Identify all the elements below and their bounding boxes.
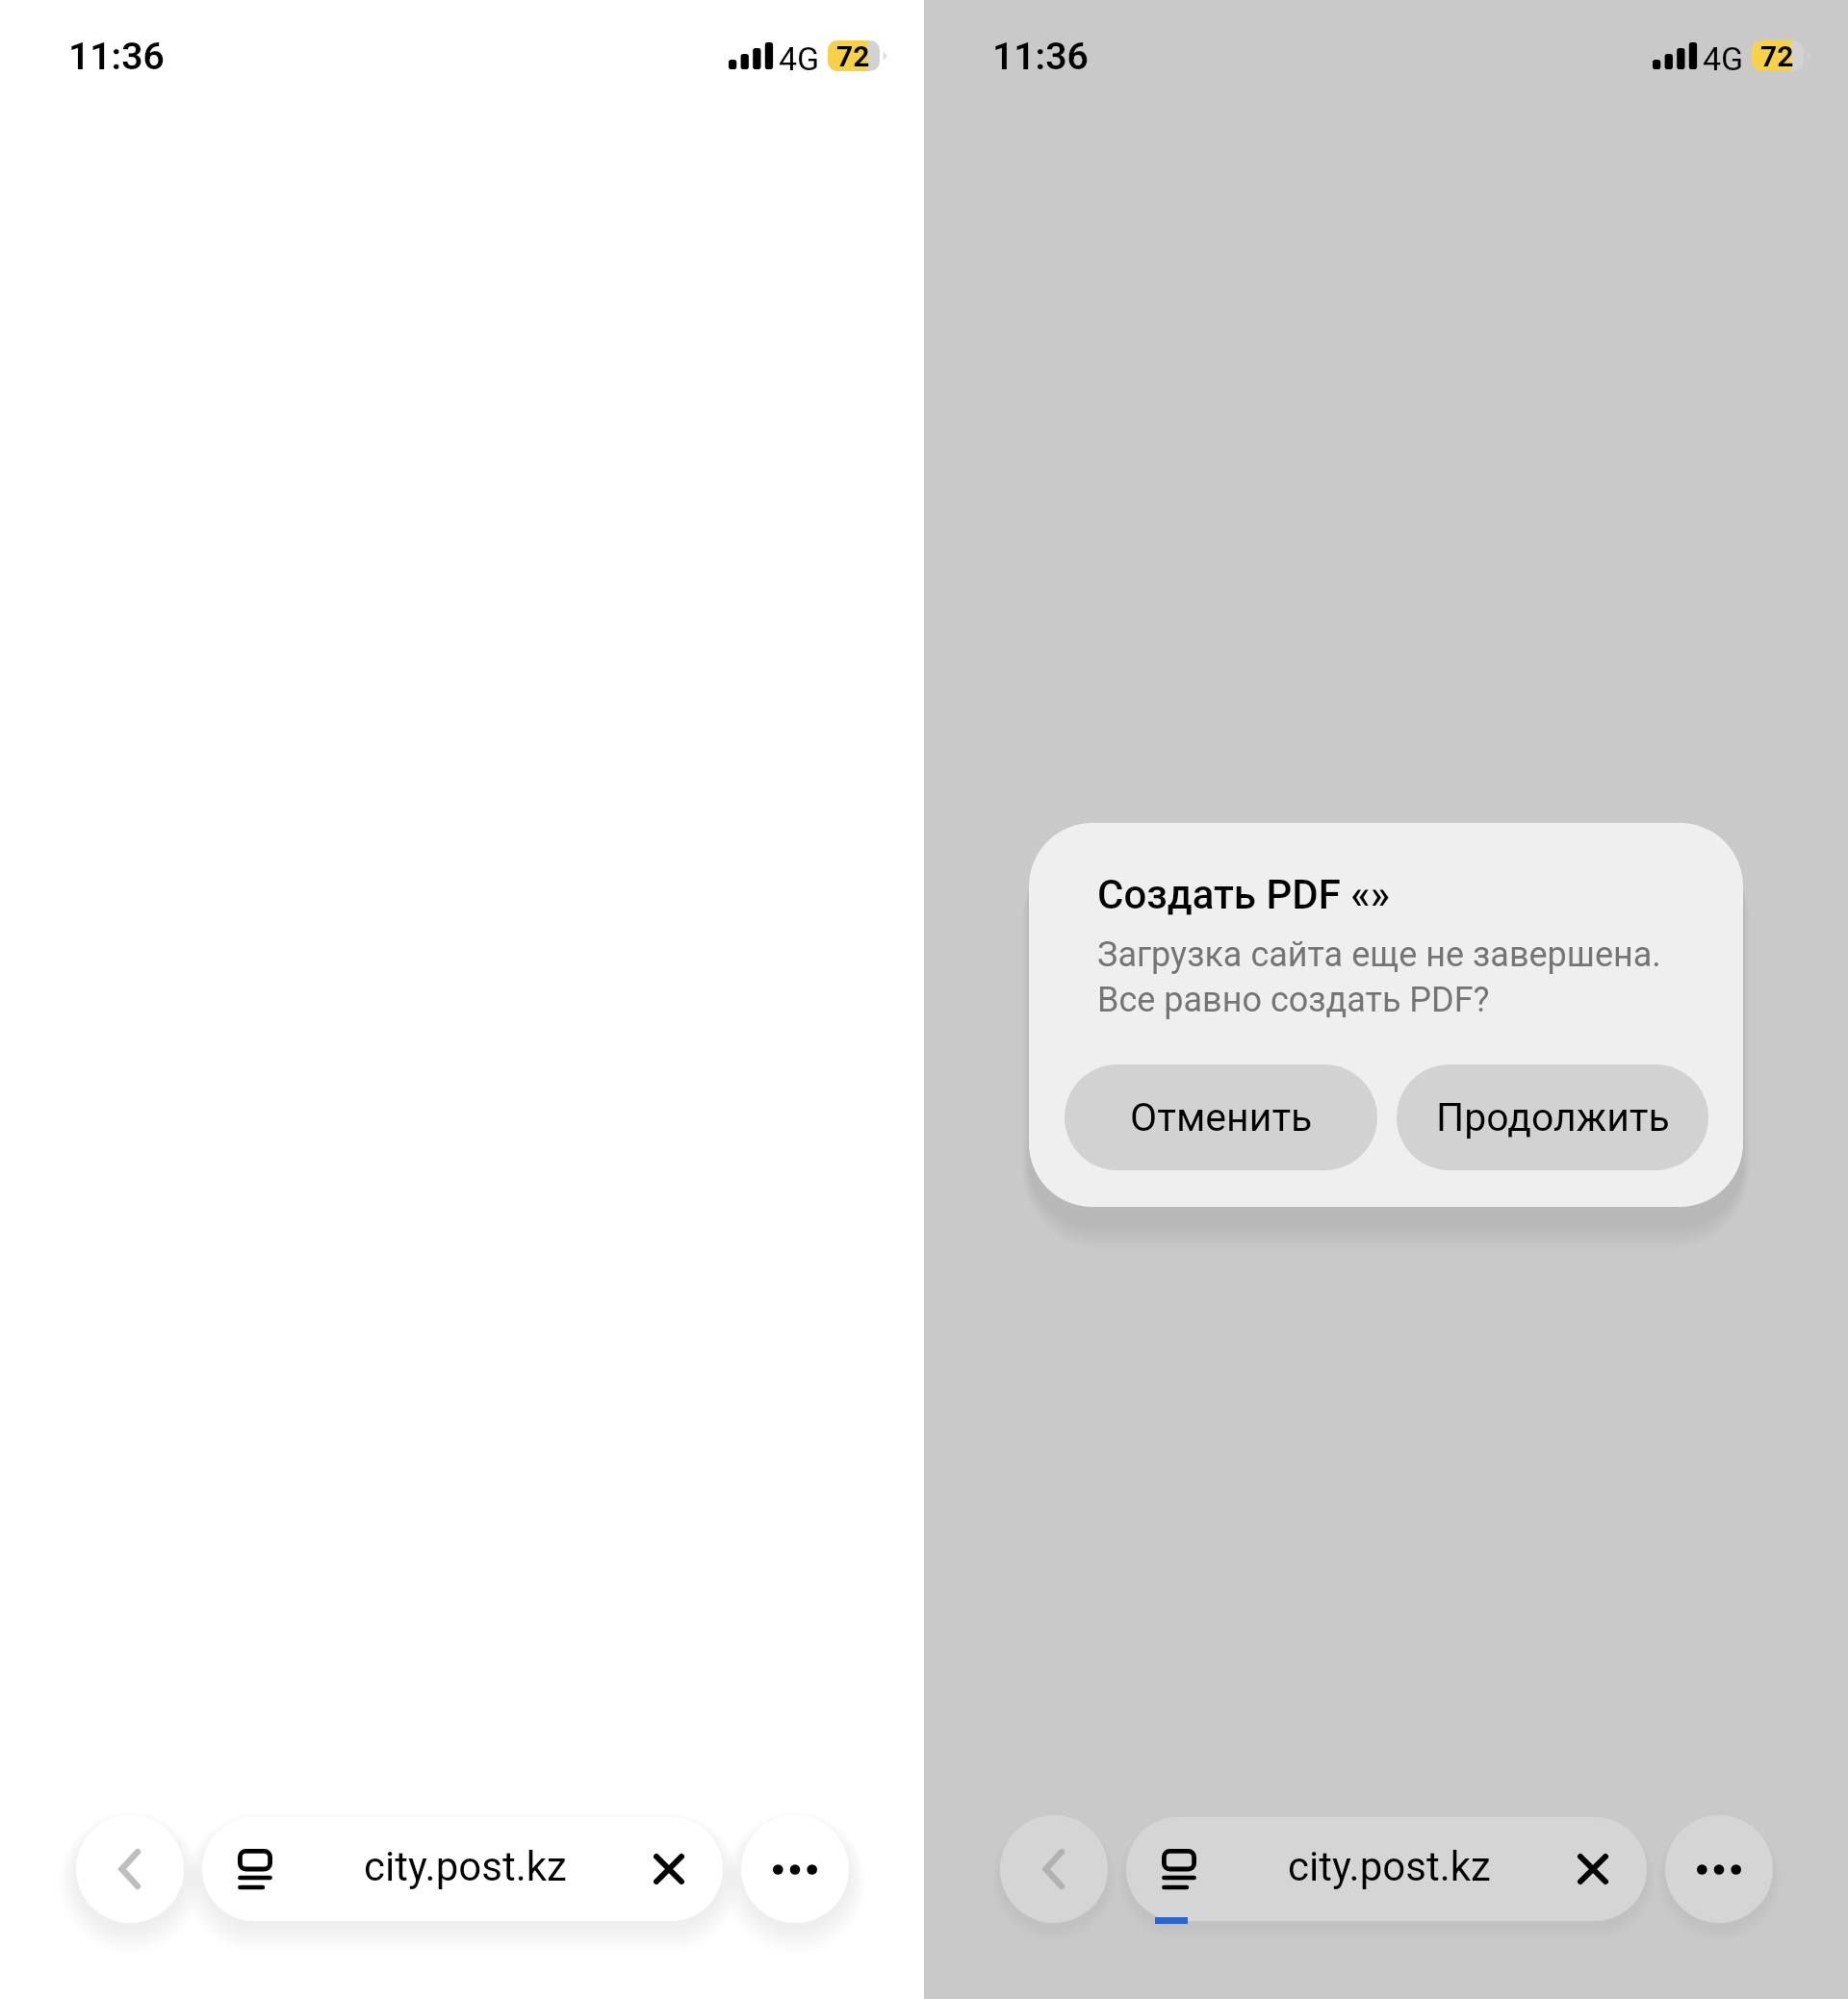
button[interactable]: Отменить: [1065, 1064, 1377, 1170]
button[interactable]: Back: [76, 1815, 184, 1923]
staticText: 11:36: [68, 35, 165, 79]
button[interactable]: Address bar: [1126, 1817, 1647, 1921]
staticText: Создать PDF «»: [1097, 871, 1391, 918]
staticText: 72: [836, 39, 870, 73]
staticText: 4G: [1703, 39, 1744, 78]
staticText: city.post.kz: [1288, 1843, 1491, 1890]
staticText: Продолжить: [1436, 1094, 1670, 1140]
button[interactable]: Back: [1000, 1815, 1108, 1923]
staticText: Загрузка сайта еще не завершена. Все рав…: [1097, 935, 1661, 1020]
button[interactable]: Close tab: [1561, 1837, 1625, 1901]
staticText: Отменить: [1130, 1094, 1313, 1140]
staticText: 11:36: [992, 35, 1089, 79]
staticText: city.post.kz: [364, 1843, 567, 1890]
staticText: 72: [1760, 39, 1794, 73]
button[interactable]: Close tab: [637, 1837, 701, 1901]
button[interactable]: Address bar: [202, 1817, 723, 1921]
button[interactable]: More options: [741, 1815, 849, 1923]
button[interactable]: More options: [1665, 1815, 1773, 1923]
staticText: 4G: [779, 39, 820, 78]
button[interactable]: Продолжить: [1397, 1064, 1708, 1170]
